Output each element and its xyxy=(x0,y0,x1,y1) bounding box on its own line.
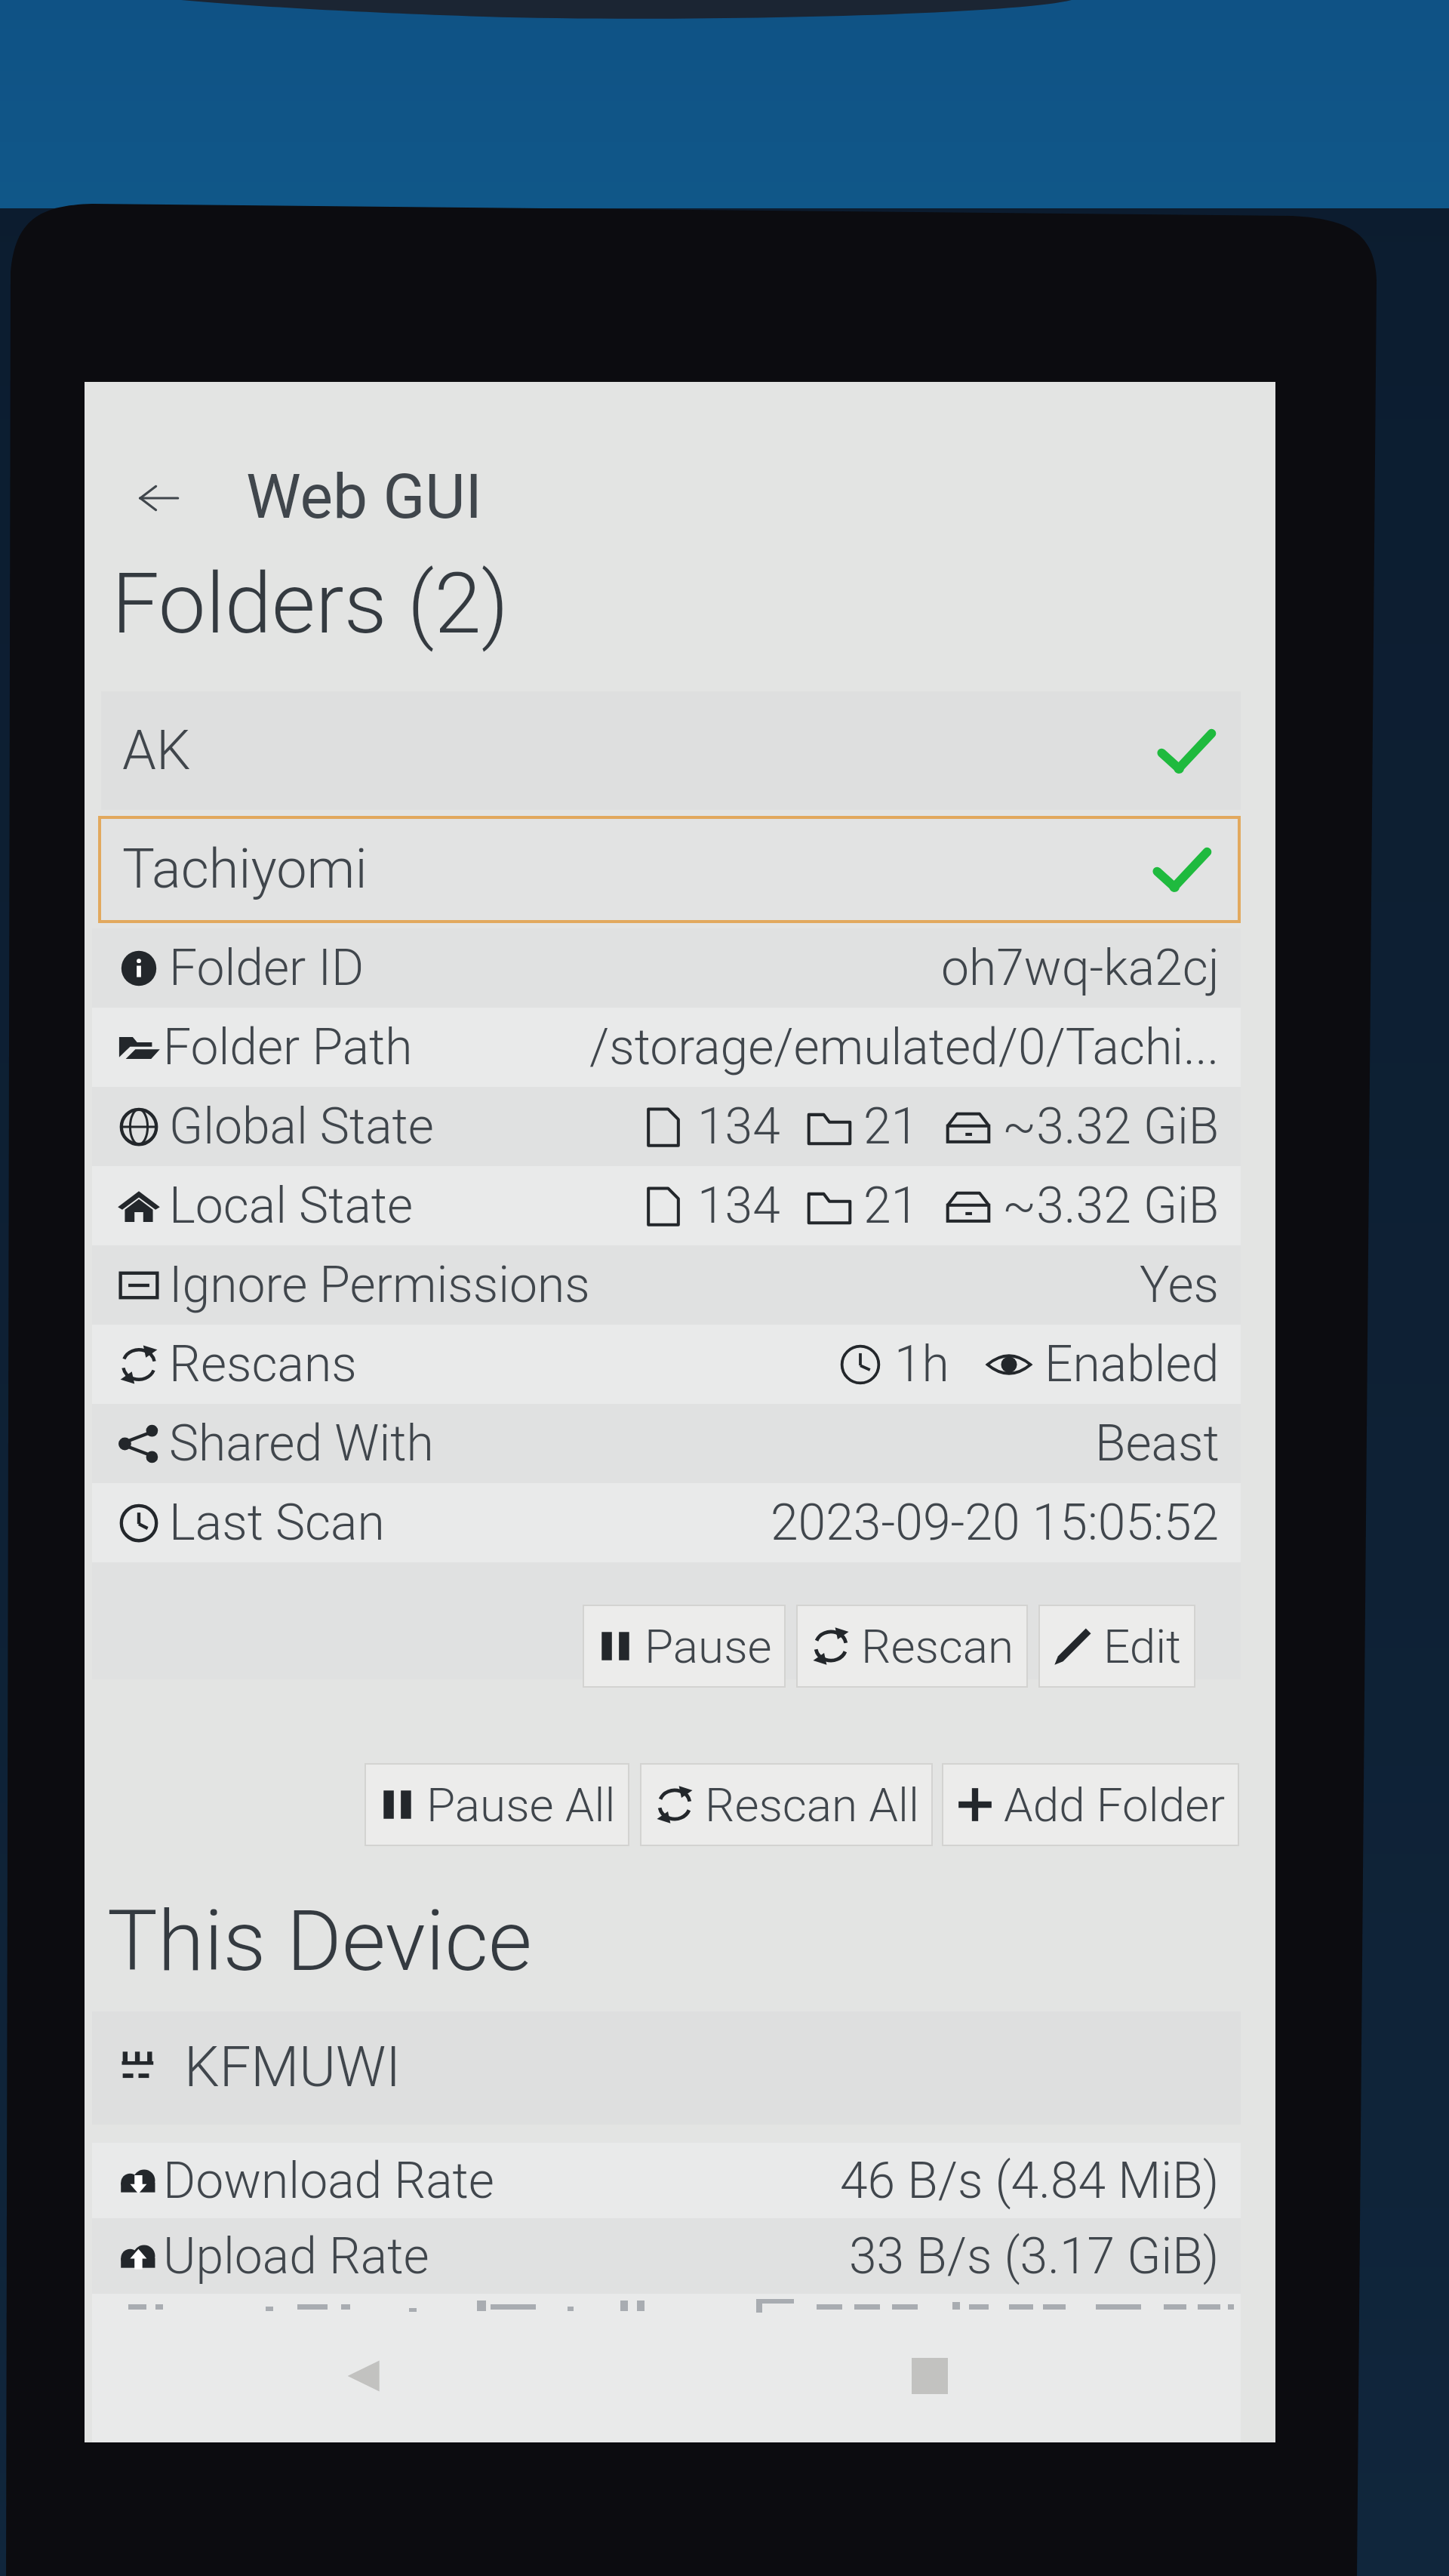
staticText: Rescans xyxy=(169,1335,357,1393)
staticText: Local State xyxy=(169,1177,414,1235)
staticText: Download Rate xyxy=(163,2152,494,2210)
button[interactable]: Back xyxy=(121,460,196,536)
button[interactable]: Pause All xyxy=(365,1763,629,1846)
staticText: Last Scan xyxy=(169,1494,385,1552)
button[interactable]: Edit xyxy=(1038,1605,1195,1688)
staticText: oh7wq-ka2cj xyxy=(941,939,1220,997)
staticText: Rescan All xyxy=(705,1777,919,1833)
staticText: 134 xyxy=(697,1177,780,1235)
staticText: 1h xyxy=(894,1335,949,1393)
staticText: Enabled xyxy=(1044,1335,1220,1393)
staticText: Folders (2) xyxy=(112,554,509,653)
staticText: 46 B/s (4.84 MiB) xyxy=(840,2152,1220,2210)
staticText: This Device xyxy=(107,1891,532,1990)
staticText: Yes xyxy=(1140,1256,1220,1314)
button[interactable]: Folder ID xyxy=(92,928,1241,1008)
staticText: Global State xyxy=(169,1097,434,1156)
button[interactable]: Back xyxy=(294,2331,430,2421)
button[interactable]: Upload Rate xyxy=(92,2218,1241,2294)
staticText: Upload Rate xyxy=(163,2227,429,2285)
staticText: Add Folder xyxy=(1004,1777,1226,1833)
staticText: 33 B/s (3.17 GiB) xyxy=(849,2227,1220,2285)
staticText: Folder Path xyxy=(163,1018,413,1076)
staticText: AK xyxy=(122,719,191,782)
button[interactable]: Rescan xyxy=(796,1605,1028,1688)
button[interactable]: Local State xyxy=(92,1166,1241,1245)
staticText: 134 xyxy=(697,1097,780,1156)
staticText: KFMUWI xyxy=(184,2034,401,2100)
button[interactable]: Folder Path xyxy=(92,1008,1241,1087)
staticText: Tachiyomi xyxy=(122,837,368,900)
button[interactable]: Rescan All xyxy=(640,1763,933,1846)
staticText: Web GUI xyxy=(246,460,482,533)
button[interactable]: Global State xyxy=(92,1087,1241,1166)
staticText: 21 xyxy=(863,1177,919,1235)
staticText: ~3.32 GiB xyxy=(1002,1177,1220,1235)
button[interactable]: KFMUWI xyxy=(92,2011,1241,2125)
staticText: Pause xyxy=(645,1619,772,1674)
staticText: Folder ID xyxy=(169,939,365,997)
button[interactable]: Rescans xyxy=(92,1325,1241,1404)
button[interactable]: Add Folder xyxy=(942,1763,1239,1846)
button[interactable]: Shared With xyxy=(92,1404,1241,1483)
button[interactable]: Last Scan xyxy=(92,1483,1241,1562)
button[interactable]: Pause xyxy=(583,1605,786,1688)
button[interactable]: Download Rate xyxy=(92,2143,1241,2218)
staticText: Edit xyxy=(1103,1619,1182,1674)
staticText: Beast xyxy=(1095,1414,1220,1473)
button[interactable]: AK xyxy=(101,691,1241,810)
staticText: Rescan xyxy=(861,1619,1014,1674)
staticText: 2023-09-20 15:05:52 xyxy=(771,1494,1220,1552)
button[interactable]: Tachiyomi xyxy=(98,816,1241,923)
button[interactable]: Ignore Permissions xyxy=(92,1245,1241,1325)
staticText: /storage/emulated/0/Tachi... xyxy=(589,1018,1220,1076)
staticText: Pause All xyxy=(426,1777,616,1833)
staticText: Shared With xyxy=(169,1414,434,1473)
staticText: ~3.32 GiB xyxy=(1002,1097,1220,1156)
staticText: 21 xyxy=(863,1097,919,1156)
staticText: Ignore Permissions xyxy=(169,1256,590,1314)
button[interactable]: Recent apps xyxy=(862,2331,998,2421)
